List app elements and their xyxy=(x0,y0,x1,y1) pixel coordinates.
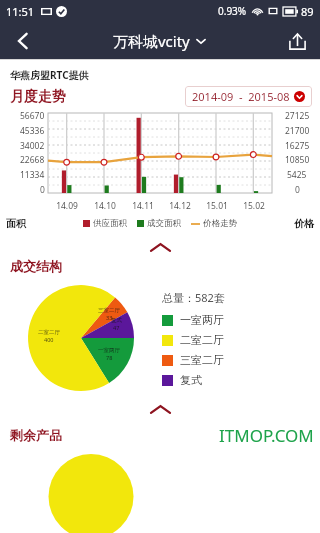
staticText: 面积 xyxy=(6,217,26,230)
staticText: 14.11 xyxy=(132,200,154,212)
staticText: 21700 xyxy=(285,125,310,137)
staticText: 价格 xyxy=(294,217,314,230)
staticText: 月度走势 xyxy=(10,88,66,106)
button[interactable]: 三室二厅 xyxy=(162,353,224,367)
staticText: ITMOP.COM xyxy=(219,424,314,447)
staticText: 10850 xyxy=(285,154,310,166)
staticText: 供应面积 xyxy=(93,218,127,229)
staticText: 27125 xyxy=(285,110,310,122)
staticText: 89 xyxy=(301,4,314,19)
button[interactable]: 二室二厅 xyxy=(162,333,224,347)
staticText: 2014-09 - 2015-08 xyxy=(192,89,290,104)
staticText: 22668 xyxy=(20,154,45,166)
staticText: 0.93% xyxy=(218,4,247,18)
staticText: 一室两厅 xyxy=(180,313,224,327)
staticText: 45336 xyxy=(20,125,45,137)
staticText: 14.12 xyxy=(169,200,191,212)
staticText: 三室二厅 xyxy=(180,353,224,367)
staticText: 56670 xyxy=(20,110,45,122)
button[interactable]: Back xyxy=(0,22,46,60)
staticText: 剩余产品 xyxy=(10,427,62,443)
staticText: 15.02 xyxy=(243,200,265,212)
staticText: 总量：582套 xyxy=(162,290,225,305)
staticText: 二室二厅 xyxy=(180,333,224,347)
staticText: 14.10 xyxy=(94,200,116,212)
staticText: 5425 xyxy=(287,169,307,181)
staticText: 三室二厅 xyxy=(98,307,120,314)
staticText: 400 xyxy=(44,336,54,343)
staticText: 复式 xyxy=(180,373,202,387)
staticText: 78 xyxy=(106,354,113,361)
staticText: 万科城vcity xyxy=(113,31,190,51)
staticText: 二室二厅 xyxy=(38,329,60,336)
button[interactable]: Collapse xyxy=(0,240,320,254)
staticText: 华燕房盟RTC提供 xyxy=(10,68,89,82)
button[interactable]: 复式 xyxy=(162,373,202,387)
staticText: 成交结构 xyxy=(10,258,62,274)
staticText: 15.01 xyxy=(206,200,228,212)
staticText: 价格走势 xyxy=(203,218,237,229)
button[interactable]: 万科城vcity xyxy=(107,31,213,51)
staticText: 复式 xyxy=(111,317,122,324)
button[interactable]: 一室两厅 xyxy=(162,313,224,327)
staticText: 0 xyxy=(40,184,45,196)
button[interactable]: 2014-09 - 2015-08 xyxy=(185,86,312,107)
staticText: 16275 xyxy=(285,140,310,152)
staticText: 一室两厅 xyxy=(98,347,120,354)
staticText: 14.09 xyxy=(56,200,78,212)
staticText: 47 xyxy=(113,324,120,331)
staticText: 34002 xyxy=(20,140,45,152)
staticText: 33 xyxy=(106,314,113,321)
staticText: 0 xyxy=(295,184,300,196)
staticText: 11:51 xyxy=(6,4,35,19)
staticText: 11334 xyxy=(20,169,45,181)
staticText: 成交面积 xyxy=(147,218,181,229)
button[interactable]: Collapse xyxy=(0,402,320,416)
button[interactable]: Share xyxy=(274,22,320,60)
